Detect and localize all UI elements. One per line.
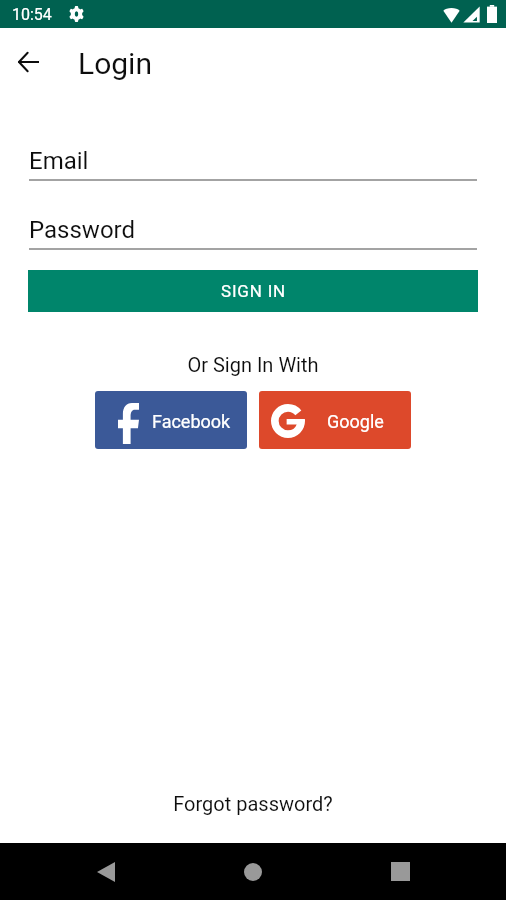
button[interactable]: Google (259, 391, 411, 449)
button[interactable]: Facebook (95, 391, 247, 449)
button[interactable]: Back (76, 843, 136, 900)
staticText: Login (78, 46, 152, 81)
staticText: Facebook (152, 411, 231, 432)
staticText: Email (29, 147, 89, 175)
staticText: SIGN IN (221, 281, 286, 301)
staticText: 10:54 (12, 5, 52, 24)
button[interactable]: SIGN IN (28, 270, 478, 312)
staticText: Password (29, 216, 136, 244)
staticText: Or Sign In With (0, 353, 506, 376)
button[interactable]: Forgot password? (0, 792, 506, 815)
staticText: Google (327, 411, 384, 432)
button[interactable]: Recent apps (370, 843, 430, 900)
button[interactable]: Back (0, 34, 56, 90)
button[interactable]: Home (223, 843, 283, 900)
